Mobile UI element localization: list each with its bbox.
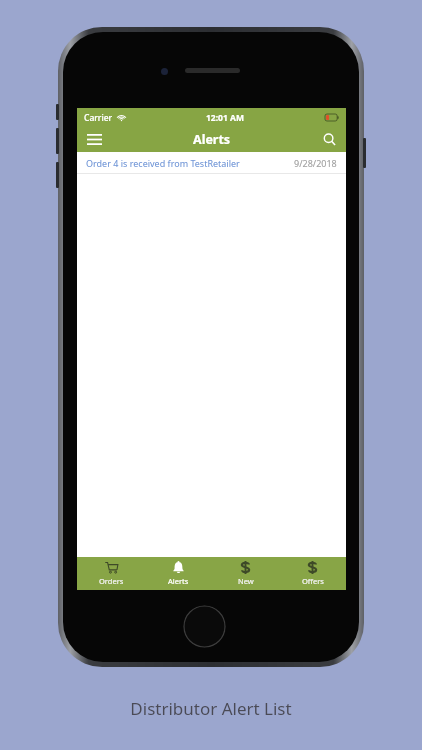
button[interactable]: Offers [279,557,346,590]
button[interactable]: Menu [77,127,111,152]
button[interactable]: Alerts [145,557,212,590]
staticText: Offers [302,576,324,586]
button[interactable]: Orders [77,557,145,590]
button[interactable]: New [212,557,279,590]
staticText: Alerts [168,576,189,586]
staticText: Alerts [193,131,231,148]
button[interactable]: Order 4 is received from TestRetailer [77,152,346,173]
button[interactable]: Search [312,127,346,152]
staticText: 12:01 AM [206,112,244,124]
staticText: Order 4 is received from TestRetailer [86,157,240,169]
staticText: Distributor Alert List [130,697,292,720]
staticText: Carrier [84,112,113,124]
button[interactable]: Home [183,605,226,648]
staticText: Orders [99,576,124,586]
staticText: 9/28/2018 [294,157,337,169]
staticText: New [238,576,254,586]
